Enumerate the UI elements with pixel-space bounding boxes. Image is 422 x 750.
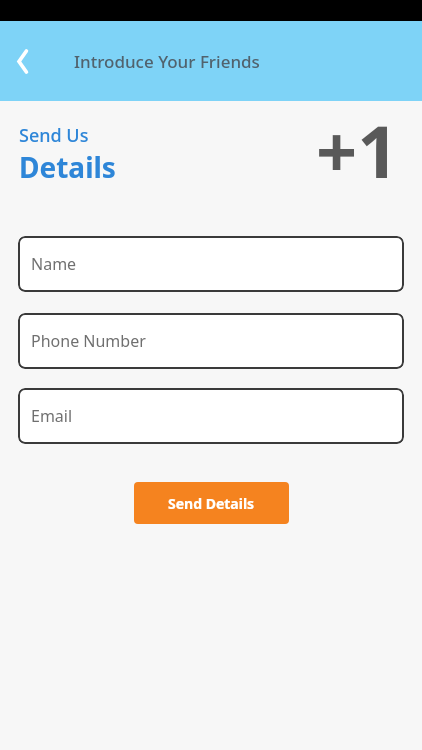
button[interactable]: Email <box>18 388 404 444</box>
staticText: Email <box>31 405 73 427</box>
staticText: Introduce Your Friends <box>74 50 260 73</box>
button[interactable] <box>0 37 48 85</box>
staticText: Phone Number <box>31 330 146 352</box>
staticText: +1 <box>316 101 399 199</box>
staticText: Send Us <box>19 123 89 148</box>
staticText: Send Details <box>168 494 255 513</box>
button[interactable]: Name <box>18 236 404 292</box>
staticText: Details <box>19 148 116 186</box>
button[interactable]: Send Details <box>134 482 289 524</box>
button[interactable]: Phone Number <box>18 313 404 369</box>
staticText: Name <box>31 253 77 275</box>
